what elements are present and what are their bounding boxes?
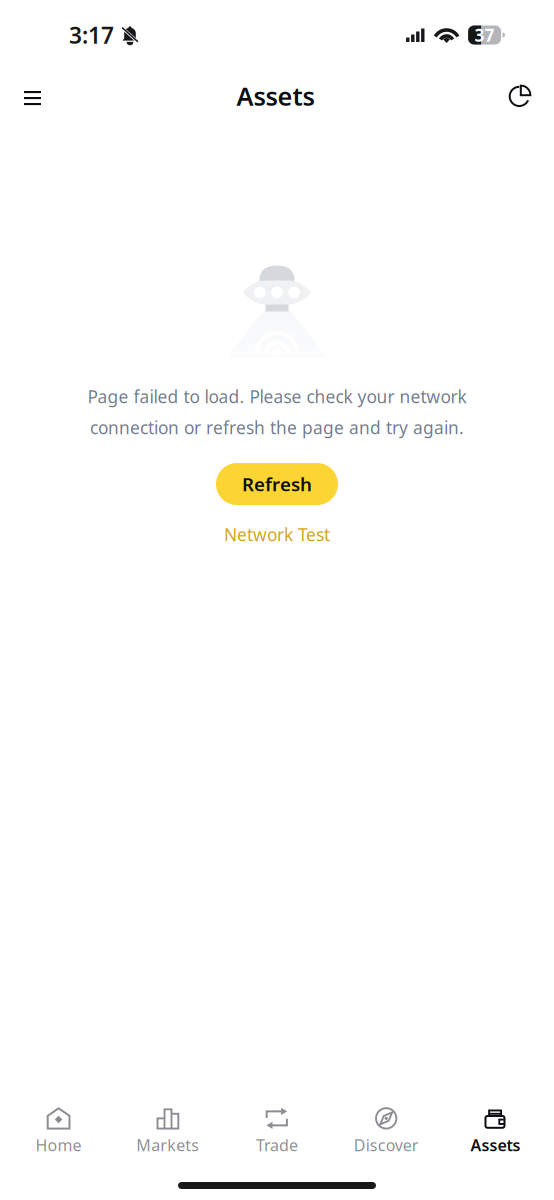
staticText: Network Test <box>224 523 330 546</box>
staticText: connection or refresh the page and try a… <box>90 416 464 439</box>
staticText: Refresh <box>242 472 312 496</box>
button[interactable]: Network Test <box>210 517 344 552</box>
button[interactable]: Home <box>4 1100 113 1162</box>
button[interactable]: Portfolio chart <box>496 74 544 118</box>
staticText: 37 <box>475 23 495 46</box>
button[interactable]: Assets <box>441 1100 550 1162</box>
staticText: Page failed to load. Please check your n… <box>87 385 466 408</box>
staticText: Discover <box>354 1134 419 1156</box>
staticText: Trade <box>256 1134 298 1156</box>
button[interactable]: Refresh <box>216 463 338 505</box>
staticText: 3:17 <box>69 20 114 50</box>
button[interactable]: Discover <box>332 1100 441 1162</box>
staticText: Markets <box>136 1134 199 1156</box>
button[interactable]: Markets <box>113 1100 222 1162</box>
button[interactable]: Menu <box>10 75 55 117</box>
button[interactable]: Trade <box>222 1100 332 1162</box>
staticText: Home <box>36 1134 82 1156</box>
staticText: Assets <box>236 79 314 113</box>
staticText: Assets <box>470 1134 520 1156</box>
